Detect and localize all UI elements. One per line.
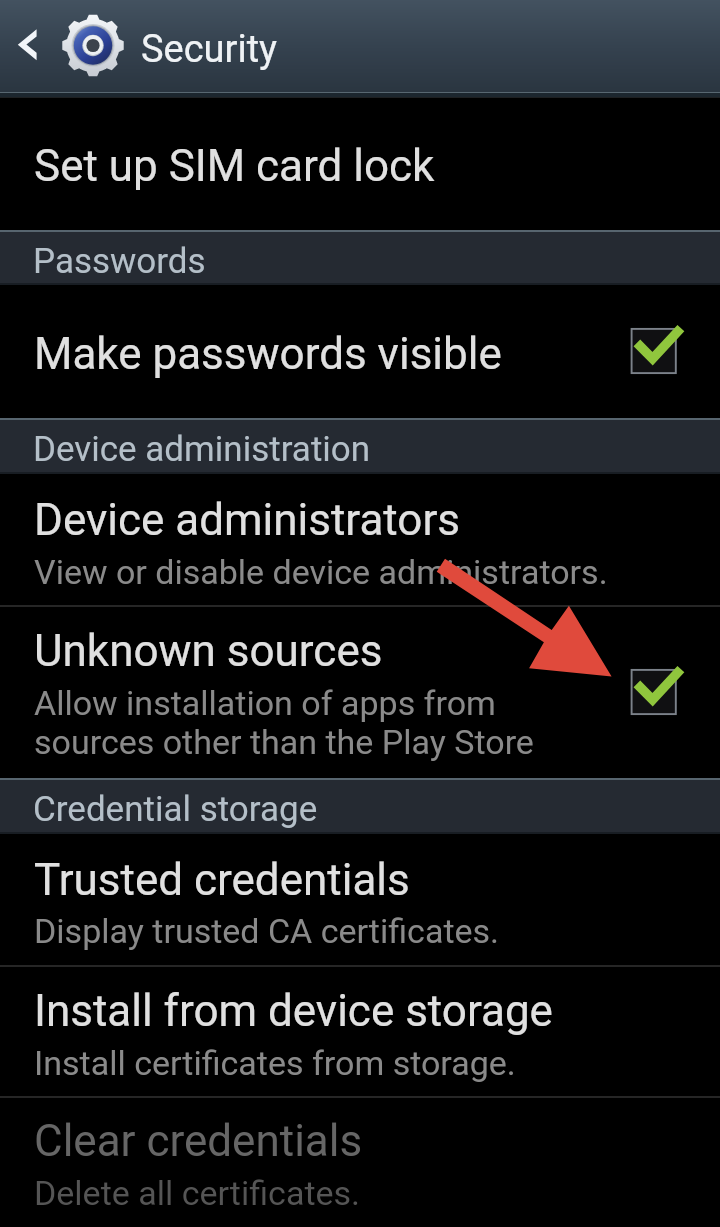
button[interactable]: Navigate up: [0, 0, 128, 91]
staticText: Device administrators: [34, 494, 461, 546]
staticText: Allow installation of apps from sources …: [34, 683, 534, 762]
button[interactable]: Device administrators: [0, 474, 720, 605]
staticText: Install certificates from storage.: [34, 1043, 516, 1083]
button[interactable]: Install from device storage: [0, 967, 720, 1096]
staticText: Display trusted CA certificates.: [34, 911, 500, 951]
button[interactable]: Make passwords visible: [0, 285, 720, 418]
button[interactable]: Toggle Make passwords visible: [616, 285, 720, 418]
staticText: Security: [141, 27, 278, 72]
staticText: View or disable device administrators.: [34, 552, 608, 592]
staticText: Clear credentials: [34, 1115, 363, 1167]
staticText: Set up SIM card lock: [34, 140, 435, 192]
button[interactable]: Clear credentials: [0, 1098, 720, 1227]
staticText: Passwords: [33, 241, 206, 282]
staticText: Install from device storage: [34, 985, 553, 1037]
staticText: Device administration: [33, 429, 371, 470]
button[interactable]: Trusted credentials: [0, 834, 720, 965]
staticText: Credential storage: [33, 789, 318, 830]
button[interactable]: Unknown sources: [0, 607, 720, 778]
staticText: Trusted credentials: [34, 854, 410, 906]
button[interactable]: Toggle Unknown sources: [616, 607, 720, 778]
staticText: Unknown sources: [34, 625, 383, 677]
staticText: Make passwords visible: [34, 328, 502, 380]
staticText: Delete all certificates.: [34, 1173, 361, 1213]
button[interactable]: Set up SIM card lock: [0, 98, 720, 230]
